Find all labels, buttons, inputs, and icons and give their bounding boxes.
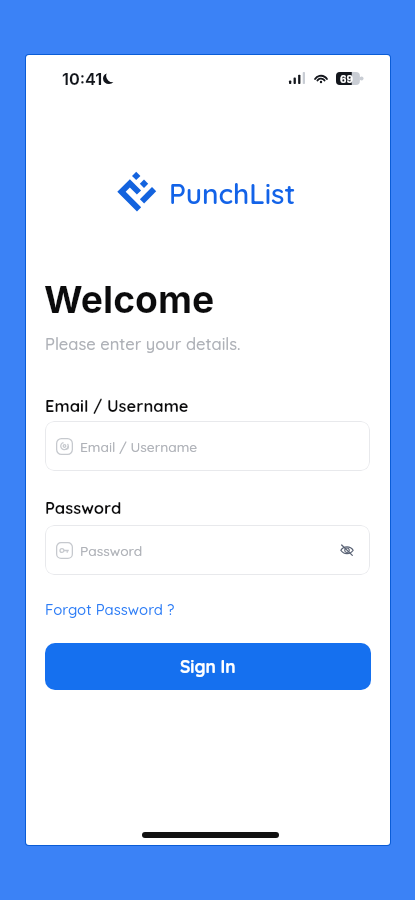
- staticText: 10:41: [62, 69, 103, 88]
- staticText: 69: [340, 73, 353, 85]
- button[interactable]: Show password: [336, 539, 358, 561]
- staticText: Password: [45, 497, 122, 518]
- staticText: Forgot Password ?: [45, 600, 175, 619]
- staticText: Email / Username: [45, 395, 189, 416]
- button[interactable]: Forgot Password ?: [44, 598, 176, 621]
- staticText: Welcome: [44, 277, 215, 322]
- staticText: Email / Username: [80, 438, 198, 455]
- button[interactable]: Email / Username: [45, 421, 370, 471]
- staticText: Sign In: [180, 656, 236, 678]
- button[interactable]: Sign In: [45, 643, 371, 690]
- staticText: Please enter your details.: [45, 333, 241, 354]
- staticText: Password: [80, 542, 143, 559]
- staticText: PunchList: [169, 176, 296, 211]
- button[interactable]: Password: [45, 525, 370, 575]
